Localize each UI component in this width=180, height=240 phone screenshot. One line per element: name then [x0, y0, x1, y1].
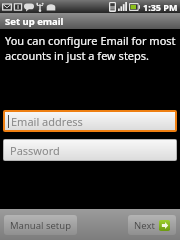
button[interactable]: Next [134, 215, 170, 235]
staticText: Next [134, 219, 155, 232]
button[interactable]: Email address [5, 112, 175, 130]
button[interactable]: Password [4, 140, 176, 160]
staticText: 1:35 PM [143, 1, 178, 13]
button[interactable]: Manual setup [10, 215, 71, 235]
staticText: Manual setup [10, 219, 71, 232]
staticText: You can configure Email for most account… [5, 33, 176, 63]
staticText: Email address [11, 114, 83, 129]
staticText: Set up email [5, 15, 64, 28]
staticText: Password [10, 143, 60, 158]
other: Next [159, 220, 170, 231]
